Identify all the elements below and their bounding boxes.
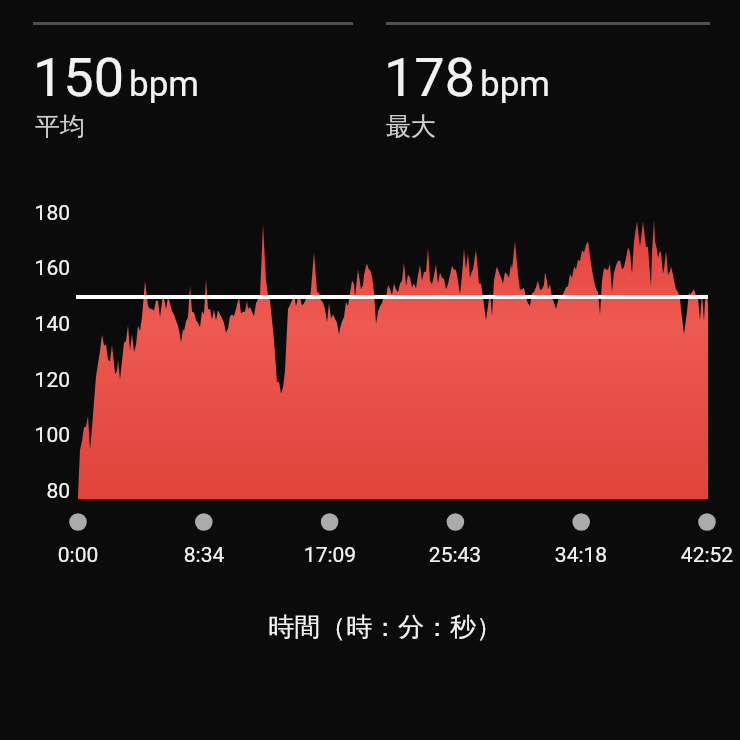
staticText: 180	[20, 201, 70, 226]
staticText: 178	[384, 46, 476, 109]
staticText: 160	[20, 256, 70, 281]
staticText: 25:43	[410, 543, 500, 568]
staticText: 最大	[386, 111, 436, 142]
staticText: 時間（時：分：秒）	[15, 611, 740, 644]
button[interactable]: 178	[384, 24, 714, 142]
staticText: 0:00	[33, 543, 123, 568]
staticText: bpm	[480, 64, 550, 105]
staticText: 80	[20, 479, 70, 504]
staticText: 平均	[35, 111, 85, 142]
staticText: 17:09	[285, 543, 375, 568]
button[interactable]: 150	[33, 24, 359, 142]
staticText: 140	[20, 312, 70, 337]
staticText: 150	[33, 46, 125, 109]
staticText: 100	[20, 423, 70, 448]
staticText: 34:18	[536, 543, 626, 568]
staticText: bpm	[129, 64, 199, 105]
staticText: 8:34	[159, 543, 249, 568]
staticText: 120	[20, 368, 70, 393]
staticText: 42:52	[662, 543, 740, 568]
